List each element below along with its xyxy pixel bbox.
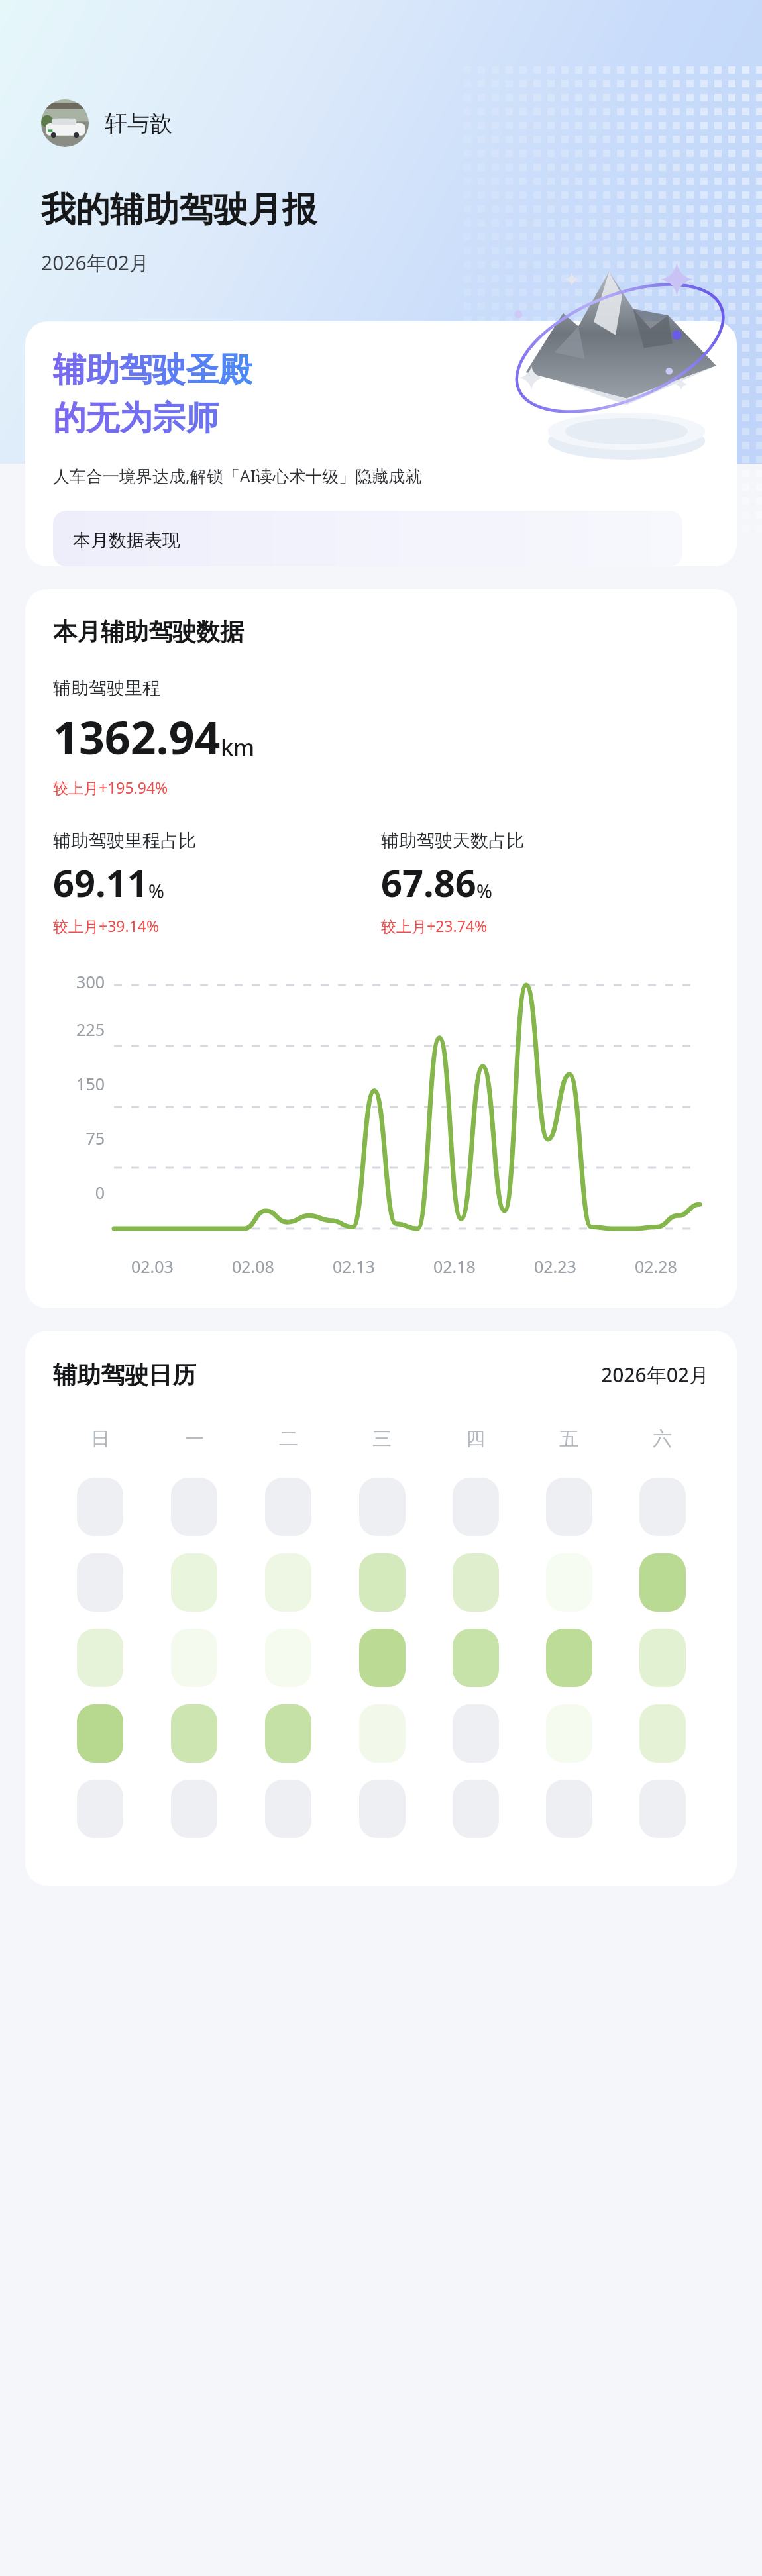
staticText: 本月数据表现: [73, 529, 180, 552]
button[interactable]: [546, 1704, 592, 1763]
button[interactable]: [171, 1704, 217, 1763]
staticText: 75: [53, 1127, 105, 1149]
staticText: 较上月+23.74%: [381, 915, 488, 936]
button[interactable]: [359, 1704, 406, 1763]
button[interactable]: [639, 1553, 686, 1612]
button[interactable]: [546, 1629, 592, 1687]
button[interactable]: [265, 1780, 311, 1838]
staticText: 六: [653, 1427, 672, 1451]
staticText: 225: [53, 1018, 105, 1041]
button[interactable]: [639, 1629, 686, 1687]
button[interactable]: [639, 1478, 686, 1536]
staticText: 日: [91, 1427, 110, 1451]
button[interactable]: [171, 1629, 217, 1687]
staticText: 辅助驾驶天数占比: [381, 829, 524, 852]
button[interactable]: [265, 1553, 311, 1612]
button[interactable]: [265, 1478, 311, 1536]
button[interactable]: [171, 1553, 217, 1612]
button[interactable]: [171, 1780, 217, 1838]
staticText: 2026年02月: [601, 1361, 709, 1388]
button[interactable]: [77, 1704, 123, 1763]
staticText: 0: [53, 1181, 105, 1204]
button[interactable]: 本月数据表现: [53, 511, 682, 566]
button[interactable]: [171, 1478, 217, 1536]
button[interactable]: [265, 1704, 311, 1763]
staticText: 较上月+195.94%: [53, 777, 168, 798]
button[interactable]: [77, 1629, 123, 1687]
button[interactable]: 轩与歆: [41, 99, 172, 147]
staticText: 02.08: [232, 1255, 274, 1278]
staticText: %: [148, 878, 164, 903]
staticText: 02.03: [131, 1255, 174, 1278]
staticText: 2026年02月: [41, 249, 149, 276]
staticText: 一: [185, 1427, 204, 1451]
button[interactable]: [639, 1780, 686, 1838]
button[interactable]: [546, 1780, 592, 1838]
staticText: 67.86: [381, 857, 476, 907]
staticText: 本月辅助驾驶数据: [53, 617, 244, 646]
button[interactable]: [265, 1629, 311, 1687]
staticText: 轩与歆: [105, 109, 172, 138]
staticText: 02.28: [635, 1255, 677, 1278]
button[interactable]: [453, 1478, 499, 1536]
button[interactable]: 辅助驾驶日历: [25, 1331, 737, 1886]
staticText: 较上月+39.14%: [53, 915, 160, 936]
button[interactable]: [359, 1629, 406, 1687]
staticText: 辅助驾驶圣殿: [53, 349, 252, 391]
staticText: %: [476, 878, 492, 903]
staticText: 人车合一境界达成,解锁「AI读心术十级」隐藏成就: [53, 464, 422, 487]
button[interactable]: [453, 1629, 499, 1687]
button[interactable]: 辅助驾驶里程占比: [53, 829, 381, 936]
staticText: 辅助驾驶里程: [53, 677, 160, 699]
button[interactable]: [453, 1780, 499, 1838]
button[interactable]: [77, 1553, 123, 1612]
button[interactable]: [77, 1478, 123, 1536]
button[interactable]: [359, 1780, 406, 1838]
button[interactable]: 辅助驾驶圣殿: [25, 321, 737, 566]
staticText: km: [221, 732, 255, 762]
button[interactable]: [639, 1704, 686, 1763]
staticText: 我的辅助驾驶月报: [41, 188, 317, 232]
button[interactable]: [359, 1478, 406, 1536]
staticText: 的无为宗师: [53, 397, 219, 439]
staticText: 四: [466, 1427, 485, 1451]
button[interactable]: [546, 1478, 592, 1536]
staticText: 02.23: [534, 1255, 576, 1278]
button[interactable]: [453, 1704, 499, 1763]
staticText: 300: [53, 970, 105, 993]
staticText: 三: [372, 1427, 392, 1451]
button[interactable]: 本月辅助驾驶数据: [25, 589, 737, 1308]
staticText: 辅助驾驶日历: [53, 1360, 196, 1390]
staticText: 辅助驾驶里程占比: [53, 829, 196, 852]
staticText: 02.18: [433, 1255, 476, 1278]
button[interactable]: [359, 1553, 406, 1612]
button[interactable]: [546, 1553, 592, 1612]
staticText: 二: [279, 1427, 298, 1451]
button[interactable]: 辅助驾驶天数占比: [381, 829, 709, 936]
staticText: 02.13: [333, 1255, 375, 1278]
staticText: 150: [53, 1072, 105, 1095]
staticText: 1362.94: [53, 706, 221, 768]
button[interactable]: [453, 1553, 499, 1612]
staticText: 69.11: [53, 857, 148, 907]
staticText: 五: [559, 1427, 578, 1451]
button[interactable]: [77, 1780, 123, 1838]
